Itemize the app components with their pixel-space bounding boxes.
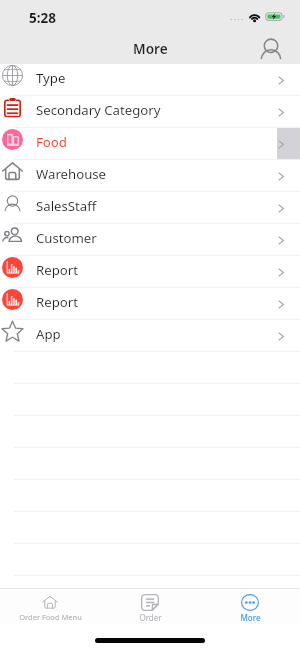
staticText: Order <box>139 612 162 623</box>
button[interactable]: Warehouse <box>0 160 300 192</box>
staticText: App <box>36 325 61 343</box>
button[interactable]: Report <box>0 288 300 320</box>
button[interactable]: More <box>200 589 300 623</box>
button[interactable]: Order Food Menu <box>0 589 100 622</box>
button[interactable]: Report <box>0 256 300 288</box>
staticText: Order Food Menu <box>19 612 82 622</box>
button[interactable]: Food <box>0 128 300 160</box>
staticText: Secondary Category <box>36 101 161 119</box>
button[interactable]: Type <box>0 64 300 96</box>
staticText: Customer <box>36 229 97 247</box>
staticText: 5:28 <box>29 9 56 27</box>
staticText: SalesStaff <box>36 197 97 215</box>
button[interactable]: Secondary Category <box>0 96 300 128</box>
staticText: Warehouse <box>36 165 107 183</box>
staticText: More <box>133 39 168 58</box>
staticText: More <box>240 612 261 623</box>
staticText: Report <box>36 293 78 311</box>
staticText: Type <box>36 69 66 87</box>
button[interactable]: Account <box>256 34 286 64</box>
button[interactable]: Customer <box>0 224 300 256</box>
button[interactable]: App <box>0 320 300 352</box>
button[interactable]: Order <box>100 589 200 623</box>
staticText: Food <box>36 133 67 151</box>
button[interactable]: SalesStaff <box>0 192 300 224</box>
staticText: Report <box>36 261 78 279</box>
